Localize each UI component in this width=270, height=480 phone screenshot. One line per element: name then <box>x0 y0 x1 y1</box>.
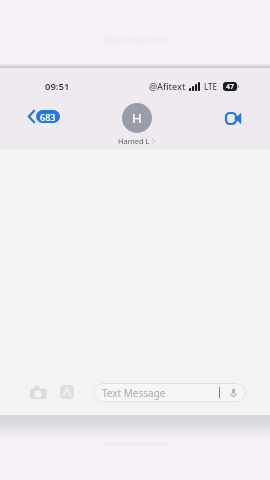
staticText: LTE <box>204 81 218 92</box>
button[interactable]: App store <box>60 385 74 399</box>
button[interactable]: H <box>118 103 155 146</box>
button[interactable]: Text Message <box>93 383 246 402</box>
staticText: @Afitext <box>149 80 186 92</box>
staticText: 683 <box>40 111 56 123</box>
button[interactable]: 683 <box>28 110 60 123</box>
staticText: Text Message <box>102 386 166 400</box>
button[interactable]: FaceTime video call <box>221 106 245 130</box>
staticText: Hamed L <box>118 136 150 146</box>
staticText: 47 <box>226 82 235 91</box>
button[interactable]: Camera <box>30 386 47 399</box>
staticText: 09:51 <box>45 80 70 93</box>
staticText: H <box>132 109 142 127</box>
